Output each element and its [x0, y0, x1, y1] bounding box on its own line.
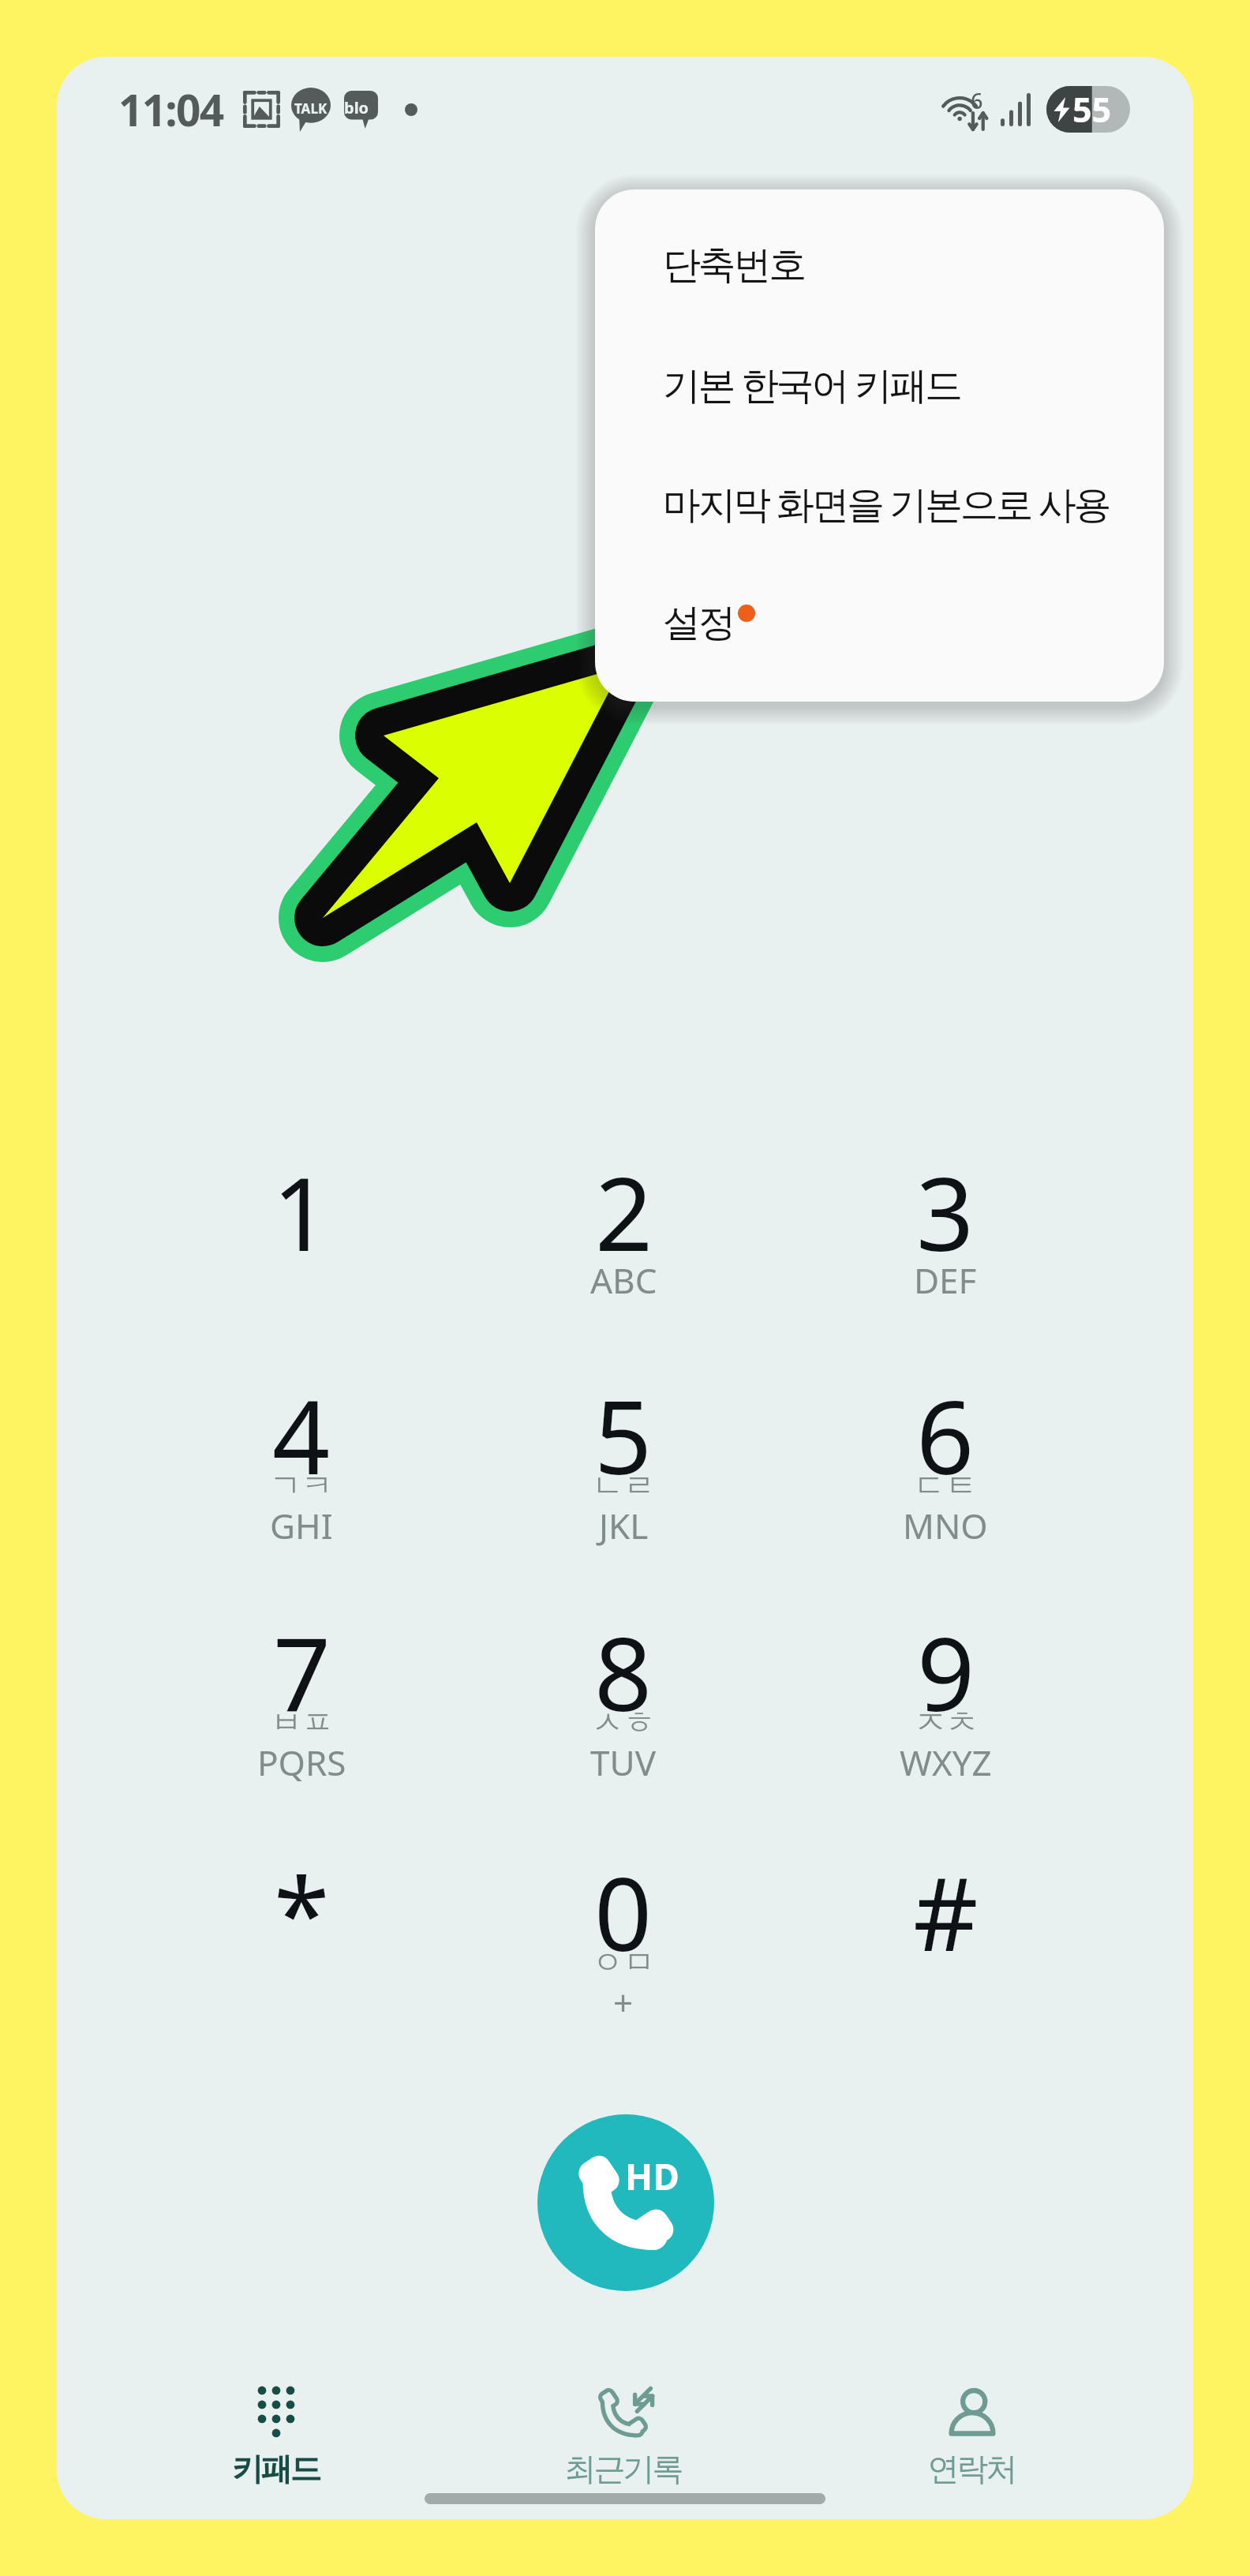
staticText: 6	[971, 86, 983, 115]
button[interactable]: 6	[784, 1339, 1106, 1568]
staticText: 8	[594, 1603, 653, 1740]
staticText: 11:04	[118, 80, 223, 139]
staticText: #	[913, 1843, 979, 1980]
button[interactable]: 4	[140, 1339, 462, 1568]
button[interactable]: 5	[462, 1339, 784, 1568]
button[interactable]: 기본 한국어 키패드	[595, 333, 1164, 436]
staticText: 설정	[663, 599, 734, 646]
staticText: 3	[916, 1143, 975, 1280]
staticText: 5	[594, 1366, 653, 1503]
staticText: 55	[1072, 86, 1112, 133]
staticText: 6	[916, 1366, 975, 1503]
staticText: ㄷㅌ	[914, 1466, 977, 1505]
button[interactable]: 마지막 화면을 기본으로 사용	[595, 452, 1164, 555]
staticText: 7	[273, 1603, 331, 1740]
staticText: ㅂㅍ	[271, 1702, 334, 1742]
button[interactable]: *	[140, 1816, 462, 2045]
staticText: JKL	[599, 1502, 649, 1549]
staticText: 최근기록	[566, 2449, 683, 2488]
staticText: 마지막 화면을 기본으로 사용	[663, 477, 1110, 530]
staticText: 0	[594, 1843, 653, 1980]
button[interactable]: 2	[462, 1116, 784, 1345]
staticText: 연락처	[929, 2449, 1016, 2488]
staticText: PQRS	[257, 1739, 346, 1786]
staticText: ABC	[590, 1256, 657, 1304]
staticText: TUV	[590, 1739, 657, 1786]
staticText: *	[274, 1843, 330, 1980]
button[interactable]: 키패드	[134, 2366, 418, 2514]
staticText: ㄴㄹ	[592, 1466, 655, 1505]
staticText: WXYZ	[900, 1739, 992, 1786]
button[interactable]: 7	[140, 1576, 462, 1805]
staticText: HD	[625, 2151, 679, 2201]
button[interactable]: 8	[462, 1576, 784, 1805]
staticText: 1	[272, 1143, 331, 1280]
staticText: 9	[917, 1603, 975, 1740]
staticText: MNO	[903, 1502, 988, 1549]
staticText: TALK	[294, 99, 327, 118]
button[interactable]: 0	[462, 1816, 784, 2045]
button[interactable]: 단축번호	[595, 214, 1164, 316]
staticText: 4	[272, 1366, 331, 1503]
button[interactable]: 1	[140, 1116, 462, 1345]
staticText: 기본 한국어 키패드	[663, 358, 960, 410]
staticText: DEF	[914, 1256, 977, 1304]
staticText: GHI	[270, 1502, 333, 1549]
staticText: ㅇㅁ	[592, 1942, 655, 1982]
button[interactable]: Call	[537, 2114, 714, 2291]
button[interactable]: 최근기록	[482, 2366, 766, 2514]
staticText: +	[613, 1979, 634, 2026]
staticText: ㅈㅊ	[915, 1702, 978, 1742]
staticText: 2	[595, 1143, 653, 1280]
staticText: 단축번호	[663, 241, 805, 289]
button[interactable]: #	[784, 1816, 1106, 2045]
button[interactable]: 설정	[595, 571, 1164, 674]
staticText: ㅅㅎ	[592, 1702, 655, 1742]
staticText: blog	[344, 97, 378, 135]
staticText: ㄱㅋ	[270, 1466, 333, 1505]
button[interactable]: 3	[784, 1116, 1106, 1345]
button[interactable]: 연락처	[830, 2366, 1114, 2514]
staticText: 키패드	[233, 2449, 320, 2488]
button[interactable]: 9	[784, 1576, 1106, 1805]
